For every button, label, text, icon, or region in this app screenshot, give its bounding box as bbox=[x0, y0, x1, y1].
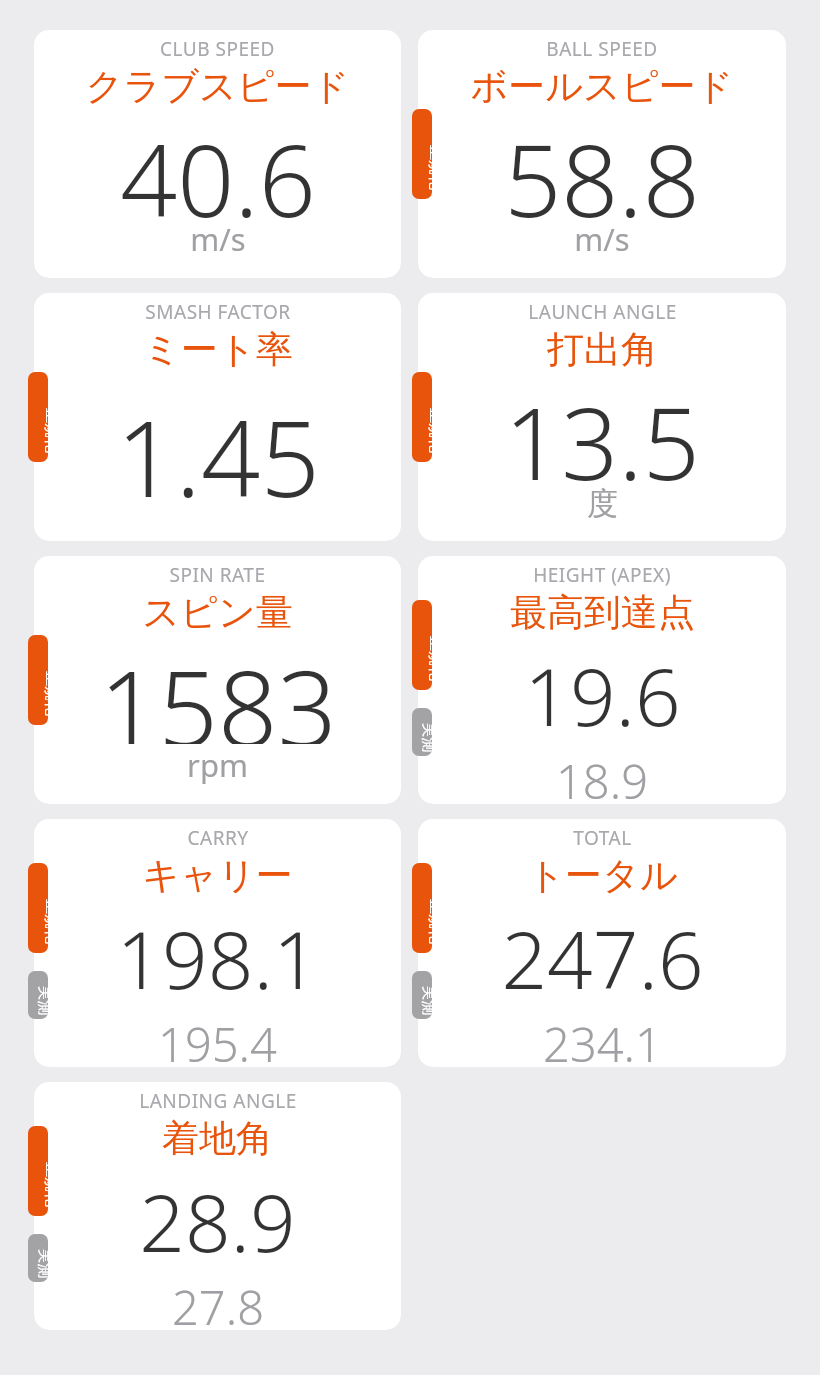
button[interactable]: BALL SPEED bbox=[418, 30, 786, 278]
staticText: 58.8 bbox=[504, 110, 700, 218]
staticText: 実測 bbox=[34, 985, 48, 1015]
button[interactable]: 正規化 bbox=[412, 600, 432, 690]
staticText: 28.9 bbox=[139, 1166, 296, 1275]
staticText: 18.9 bbox=[556, 749, 648, 804]
staticText: 198.1 bbox=[116, 903, 319, 1012]
staticText: 13.5 bbox=[504, 373, 700, 484]
button[interactable]: 正規化 bbox=[28, 863, 48, 953]
staticText: 打出角 bbox=[547, 326, 658, 373]
staticText: TOTAL bbox=[573, 825, 632, 851]
staticText: 247.6 bbox=[501, 903, 704, 1012]
staticText: HEIGHT (APEX) bbox=[533, 562, 671, 588]
staticText: rpm bbox=[187, 744, 248, 786]
button[interactable]: LANDING ANGLE bbox=[34, 1082, 401, 1330]
staticText: ボールスピード bbox=[470, 63, 734, 110]
button[interactable]: 正規化 bbox=[412, 372, 432, 462]
button[interactable]: TOTAL bbox=[418, 819, 786, 1067]
button[interactable]: 実測 bbox=[28, 1234, 48, 1282]
button[interactable]: LAUNCH ANGLE bbox=[418, 293, 786, 541]
staticText: 実測 bbox=[34, 1248, 48, 1278]
staticText: SPIN RATE bbox=[169, 562, 266, 588]
staticText: ミート率 bbox=[143, 326, 293, 373]
button[interactable]: 正規化 bbox=[28, 372, 48, 462]
staticText: LANDING ANGLE bbox=[139, 1088, 297, 1114]
staticText: LAUNCH ANGLE bbox=[528, 299, 677, 325]
button[interactable]: CLUB SPEED bbox=[34, 30, 401, 278]
button[interactable]: 実測 bbox=[412, 708, 432, 756]
staticText: スピン量 bbox=[142, 589, 293, 636]
button[interactable]: 正規化 bbox=[412, 863, 432, 953]
staticText: 正規化 bbox=[426, 636, 432, 681]
staticText: トータル bbox=[527, 852, 678, 899]
staticText: 着地角 bbox=[162, 1115, 273, 1162]
staticText: CLUB SPEED bbox=[160, 36, 275, 62]
button[interactable]: HEIGHT (APEX) bbox=[418, 556, 786, 804]
button[interactable]: 正規化 bbox=[412, 109, 432, 199]
staticText: BALL SPEED bbox=[546, 36, 658, 62]
button[interactable]: 実測 bbox=[412, 971, 432, 1019]
button[interactable]: 正規化 bbox=[28, 635, 48, 725]
staticText: 1.45 bbox=[116, 386, 320, 528]
staticText: 19.6 bbox=[524, 640, 681, 749]
staticText: 正規化 bbox=[426, 408, 432, 453]
staticText: 正規化 bbox=[42, 408, 48, 453]
staticText: 195.4 bbox=[158, 1012, 277, 1067]
staticText: 実測 bbox=[418, 722, 432, 752]
button[interactable]: SMASH FACTOR bbox=[34, 293, 401, 541]
staticText: キャリー bbox=[142, 852, 293, 899]
staticText: 234.1 bbox=[543, 1012, 662, 1067]
staticText: 正規化 bbox=[426, 145, 432, 190]
staticText: クラブスピード bbox=[85, 63, 350, 110]
staticText: 最高到達点 bbox=[510, 589, 695, 636]
button[interactable]: 正規化 bbox=[28, 1126, 48, 1216]
staticText: 1583 bbox=[99, 636, 337, 744]
button[interactable]: CARRY bbox=[34, 819, 401, 1067]
staticText: 実測 bbox=[418, 985, 432, 1015]
staticText: 正規化 bbox=[42, 671, 48, 716]
staticText: m/s bbox=[190, 218, 246, 260]
staticText: 正規化 bbox=[42, 1162, 48, 1207]
staticText: 27.8 bbox=[172, 1275, 264, 1330]
staticText: 度 bbox=[587, 484, 618, 523]
staticText: 40.6 bbox=[120, 110, 316, 218]
staticText: 正規化 bbox=[426, 899, 432, 944]
staticText: CARRY bbox=[187, 825, 249, 851]
button[interactable]: 実測 bbox=[28, 971, 48, 1019]
staticText: SMASH FACTOR bbox=[145, 299, 291, 325]
button[interactable]: SPIN RATE bbox=[34, 556, 401, 804]
staticText: m/s bbox=[574, 218, 630, 260]
staticText: 正規化 bbox=[42, 899, 48, 944]
